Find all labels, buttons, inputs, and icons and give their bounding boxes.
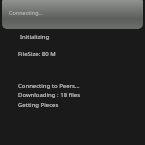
staticText: Downloading : 18 files xyxy=(18,91,81,99)
staticText: Connecting to Peers... xyxy=(18,82,80,90)
staticText: Initializing xyxy=(20,33,50,41)
button[interactable]: Connecting... xyxy=(2,0,143,29)
staticText: Getting Pieces xyxy=(18,101,59,109)
staticText: FileSize: 80 M xyxy=(18,50,56,58)
staticText: Connecting... xyxy=(9,9,43,16)
